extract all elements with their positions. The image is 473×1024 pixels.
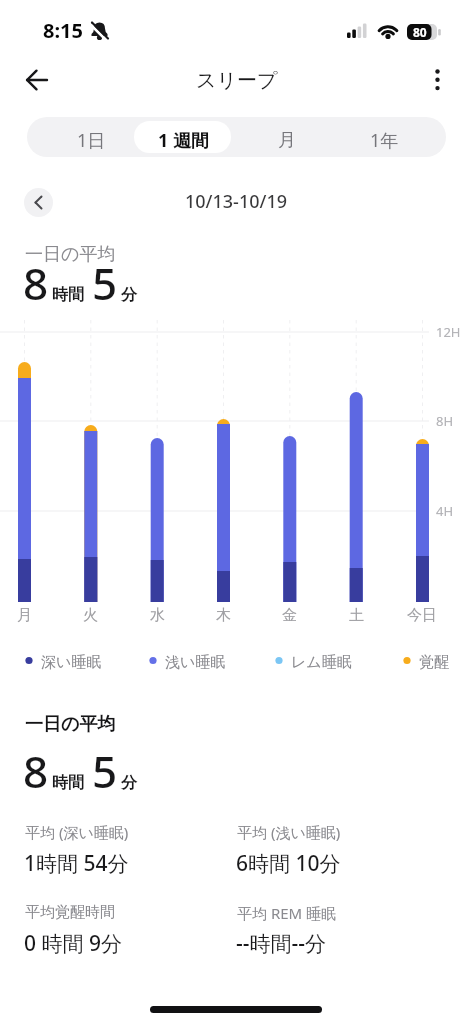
- staticText: 浅い睡眠: [165, 653, 226, 672]
- button[interactable]: 1日: [39, 120, 143, 160]
- staticText: 1時間 54分: [24, 849, 129, 878]
- staticText: 1日: [77, 128, 106, 153]
- staticText: 5: [92, 253, 118, 313]
- staticText: 覚醒: [419, 653, 449, 672]
- staticText: 1年: [370, 128, 399, 153]
- staticText: 平均 (深い睡眠): [25, 822, 129, 842]
- staticText: 金: [282, 606, 297, 625]
- staticText: 月: [278, 129, 296, 152]
- staticText: 8: [23, 253, 49, 313]
- staticText: 深い睡眠: [41, 653, 102, 672]
- button[interactable]: [420, 62, 456, 98]
- staticText: 平均 REM 睡眠: [237, 903, 337, 923]
- staticText: --時間--分: [236, 929, 326, 958]
- staticText: 10/13-10/19: [185, 189, 288, 214]
- staticText: 今日: [407, 606, 437, 625]
- staticText: 4H: [436, 502, 454, 520]
- button[interactable]: [18, 62, 56, 98]
- staticText: 平均覚醒時間: [25, 903, 115, 922]
- button[interactable]: 月: [235, 120, 339, 160]
- staticText: 80: [413, 24, 427, 40]
- staticText: 分: [121, 773, 137, 793]
- staticText: 8:15: [43, 17, 83, 44]
- staticText: スリープ: [196, 68, 278, 93]
- button[interactable]: 1年: [332, 120, 436, 160]
- staticText: レム睡眠: [291, 653, 352, 672]
- button[interactable]: [24, 188, 53, 217]
- staticText: 5: [92, 741, 118, 801]
- staticText: 水: [150, 606, 165, 625]
- staticText: 一日の平均: [25, 713, 116, 736]
- staticText: 8H: [436, 412, 454, 430]
- staticText: 一日の平均: [25, 243, 116, 266]
- staticText: 6時間 10分: [236, 849, 341, 878]
- button[interactable]: 1 週間: [131, 120, 235, 160]
- staticText: 分: [121, 285, 137, 305]
- staticText: 12H: [436, 323, 461, 341]
- staticText: 0 時間 9分: [24, 929, 122, 958]
- staticText: 平均 (浅い睡眠): [237, 822, 341, 842]
- staticText: 火: [83, 606, 98, 625]
- staticText: 時間: [52, 773, 84, 793]
- staticText: 1 週間: [158, 128, 209, 153]
- staticText: 8: [23, 741, 49, 801]
- staticText: 土: [349, 606, 364, 625]
- staticText: 時間: [52, 285, 84, 305]
- staticText: 木: [216, 606, 231, 625]
- staticText: 月: [17, 606, 32, 625]
